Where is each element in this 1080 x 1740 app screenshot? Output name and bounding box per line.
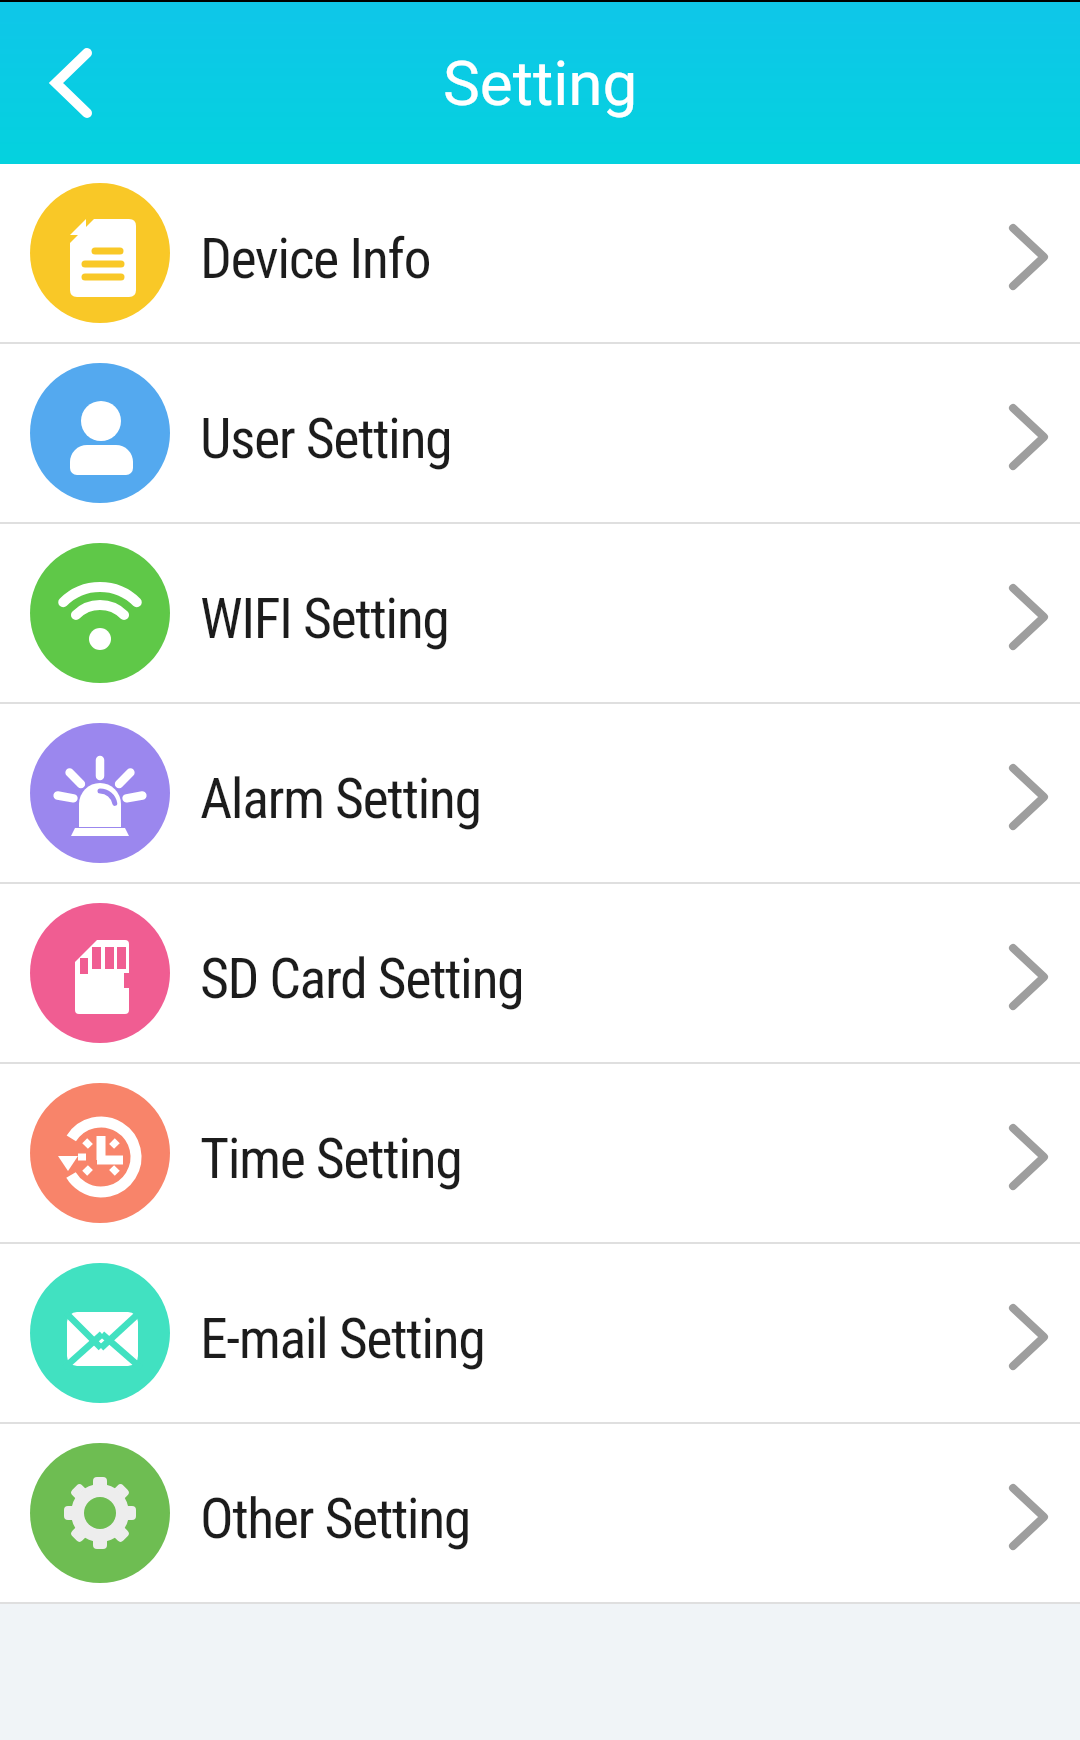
button[interactable]: Time Setting [0, 1064, 1080, 1242]
staticText: User Setting [200, 406, 452, 472]
button[interactable]: Other Setting [0, 1424, 1080, 1602]
button[interactable]: WIFI Setting [0, 524, 1080, 702]
button[interactable] [36, 38, 106, 128]
button[interactable]: User Setting [0, 344, 1080, 522]
staticText: E-mail Setting [200, 1306, 485, 1372]
button[interactable]: SD Card Setting [0, 884, 1080, 1062]
staticText: Other Setting [200, 1486, 470, 1552]
button[interactable]: Device Info [0, 164, 1080, 342]
button[interactable]: E-mail Setting [0, 1244, 1080, 1422]
staticText: Device Info [200, 226, 431, 292]
button[interactable]: Alarm Setting [0, 704, 1080, 882]
staticText: WIFI Setting [200, 586, 449, 652]
staticText: SD Card Setting [200, 946, 524, 1012]
staticText: Alarm Setting [200, 766, 481, 832]
staticText: Setting [443, 47, 638, 120]
staticText: Time Setting [200, 1126, 462, 1192]
